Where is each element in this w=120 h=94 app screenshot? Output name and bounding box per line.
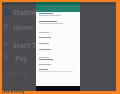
staticText: Station (13, 8, 39, 18)
staticText: Start Tr (13, 41, 39, 51)
staticText: Home (13, 23, 34, 33)
staticText: Pay (15, 54, 28, 64)
staticText: and saving (2, 76, 36, 94)
